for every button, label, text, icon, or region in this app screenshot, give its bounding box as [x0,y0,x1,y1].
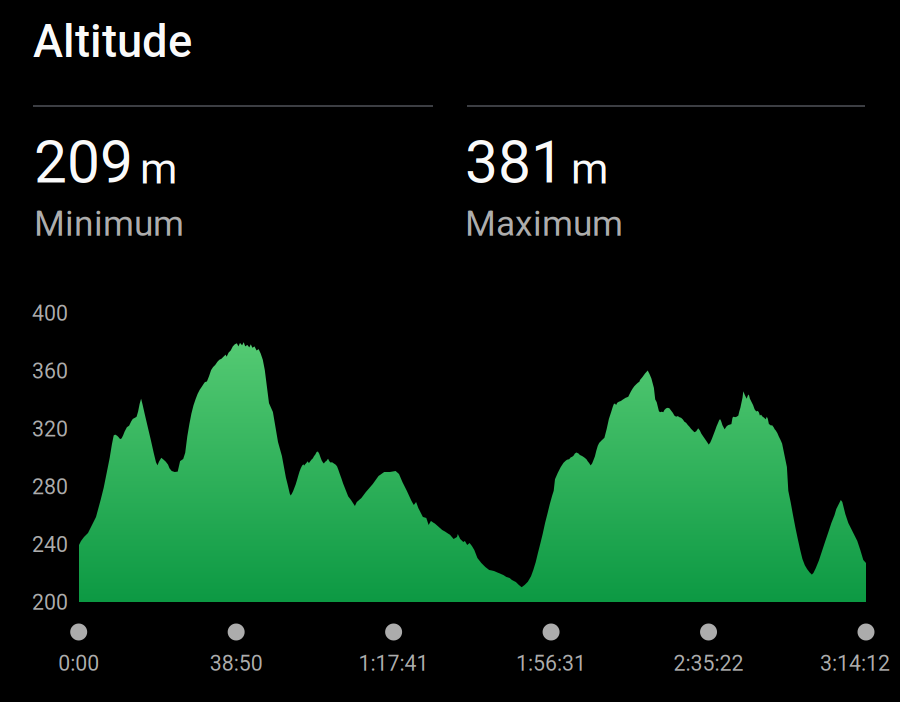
button[interactable]: 381 [464,120,864,240]
staticText: 209 [34,128,133,197]
staticText: 240 [32,532,68,557]
staticText: m [571,144,608,194]
button[interactable]: Altitude chart [79,302,866,602]
staticText: 381 [465,128,564,197]
staticText: 38:50 [210,651,263,676]
staticText: Altitude [33,15,192,68]
staticText: 1:56:31 [516,651,586,676]
staticText: 360 [32,359,68,384]
staticText: Minimum [34,203,184,244]
staticText: 400 [32,301,68,326]
staticText: 1:17:41 [359,651,429,676]
staticText: 3:14:12 [820,651,890,676]
staticText: 320 [32,417,68,442]
button[interactable]: 209 [33,120,433,240]
staticText: 200 [32,590,68,615]
staticText: Maximum [465,203,623,244]
staticText: m [140,144,177,194]
staticText: 0:00 [58,651,99,676]
staticText: 2:35:22 [673,651,743,676]
staticText: 280 [32,474,68,499]
